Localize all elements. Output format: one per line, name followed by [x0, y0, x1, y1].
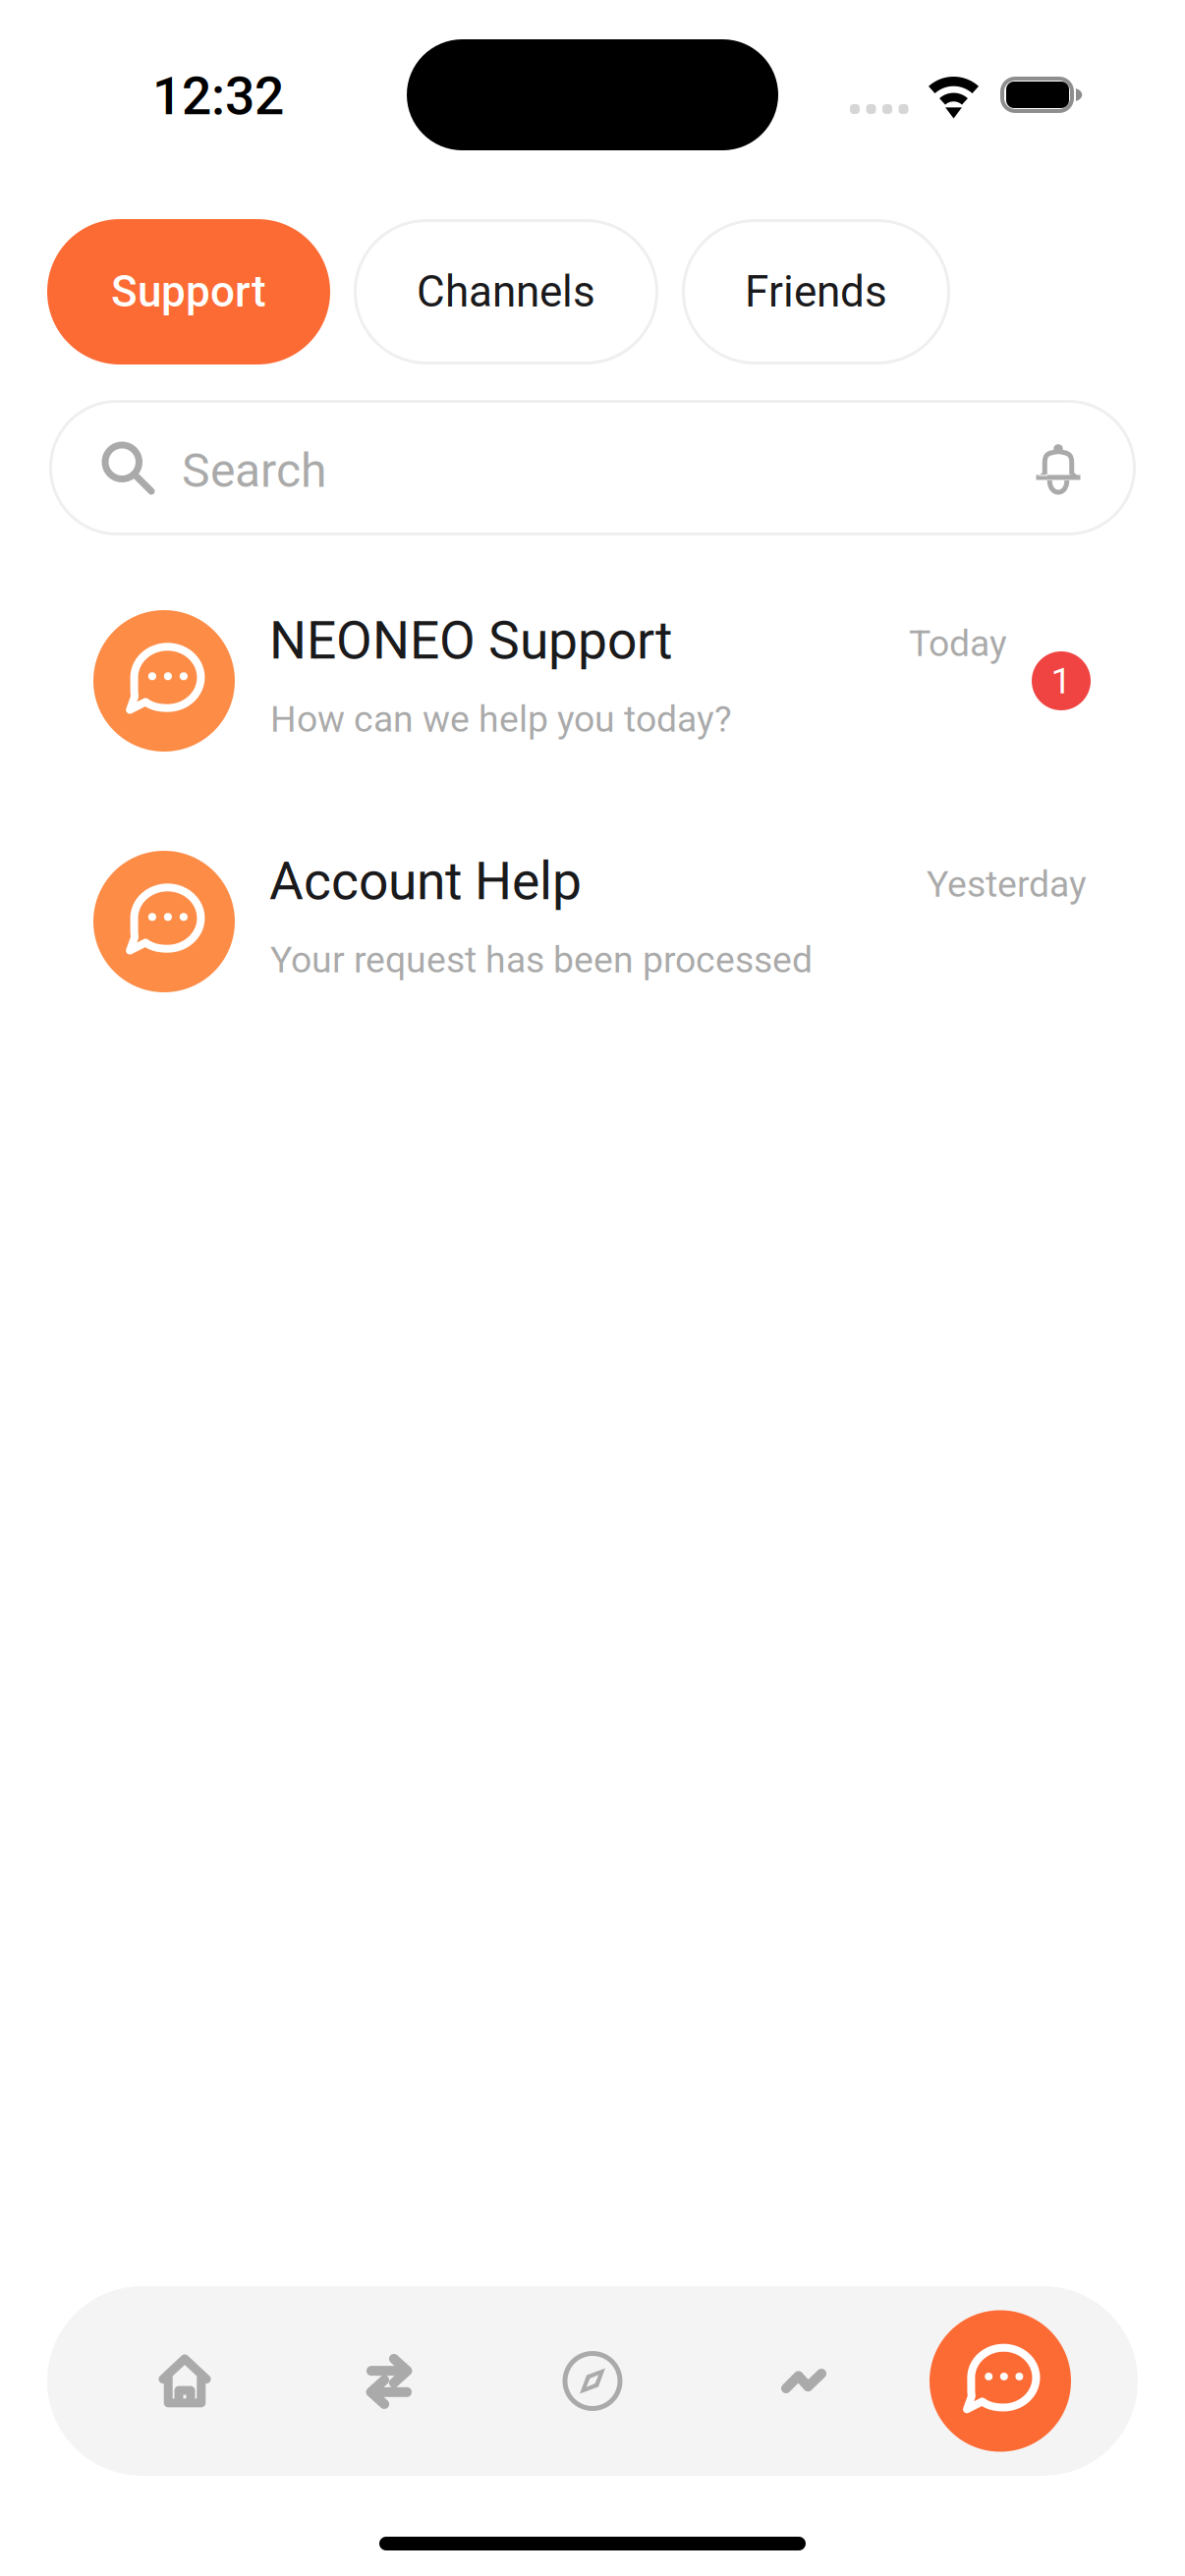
staticText: Channels [417, 266, 595, 317]
button[interactable]: Messages [47, 2286, 1071, 2476]
button[interactable]: Explore [47, 2286, 666, 2476]
staticText: Yesterday [927, 863, 1087, 906]
button[interactable]: Channels [354, 219, 658, 364]
button[interactable]: Notifications [49, 414, 1112, 522]
staticText: Today [909, 622, 1007, 665]
button[interactable]: Friends [682, 219, 950, 364]
button[interactable]: Home [47, 2286, 258, 2476]
staticText: Friends [745, 266, 887, 317]
button[interactable]: NEONEO Support [0, 610, 1185, 752]
staticText: Account Help [269, 851, 582, 912]
button[interactable]: Account Help [0, 851, 1185, 992]
button[interactable]: Support [47, 219, 330, 364]
staticText: Your request has been processed [270, 938, 813, 981]
staticText: How can we help you today? [270, 698, 732, 741]
staticText: Search [182, 443, 326, 498]
staticText: NEONEO Support [269, 610, 672, 671]
staticText: 1 [1051, 659, 1072, 702]
button[interactable]: Transfers [47, 2286, 463, 2476]
staticText: 12:32 [152, 66, 284, 127]
button[interactable]: Activity [47, 2286, 877, 2476]
staticText: Support [111, 266, 266, 317]
